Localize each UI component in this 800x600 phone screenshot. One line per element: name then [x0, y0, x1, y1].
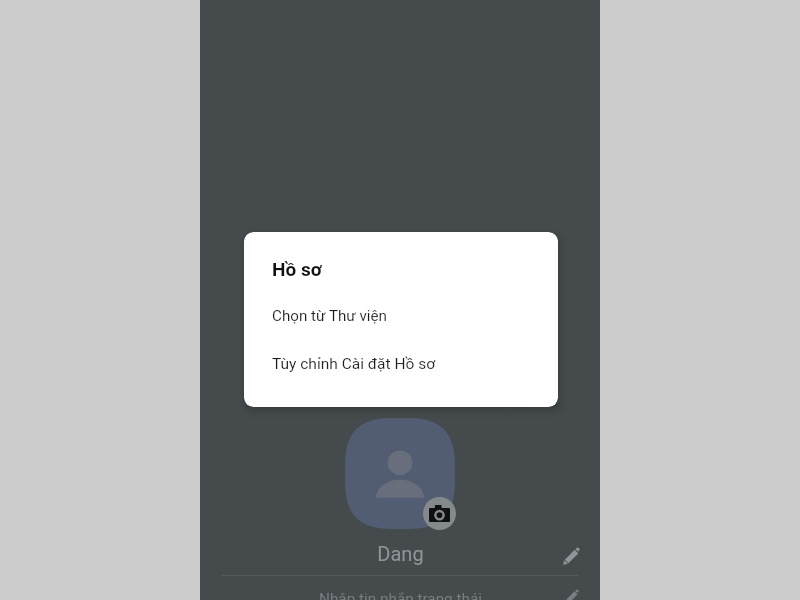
staticText: Hồ sơ	[272, 258, 322, 280]
button[interactable]: Dang	[200, 535, 600, 572]
button[interactable]: Profile photo	[345, 418, 455, 529]
staticText: Nhập tin nhắn trạng thái	[319, 590, 482, 600]
button[interactable]: Change profile photo	[423, 497, 456, 530]
staticText: Chọn từ Thư viện	[272, 307, 387, 325]
button[interactable]: Edit status message	[560, 585, 582, 600]
staticText: Tùy chỉnh Cài đặt Hồ sơ	[272, 355, 436, 373]
button[interactable]: Tùy chỉnh Cài đặt Hồ sơ	[244, 350, 558, 378]
staticText: Dang	[377, 542, 424, 565]
button[interactable]: Nhập tin nhắn trạng thái	[200, 580, 600, 600]
button[interactable]: Edit name	[558, 543, 583, 568]
button[interactable]: Chọn từ Thư viện	[244, 302, 558, 330]
